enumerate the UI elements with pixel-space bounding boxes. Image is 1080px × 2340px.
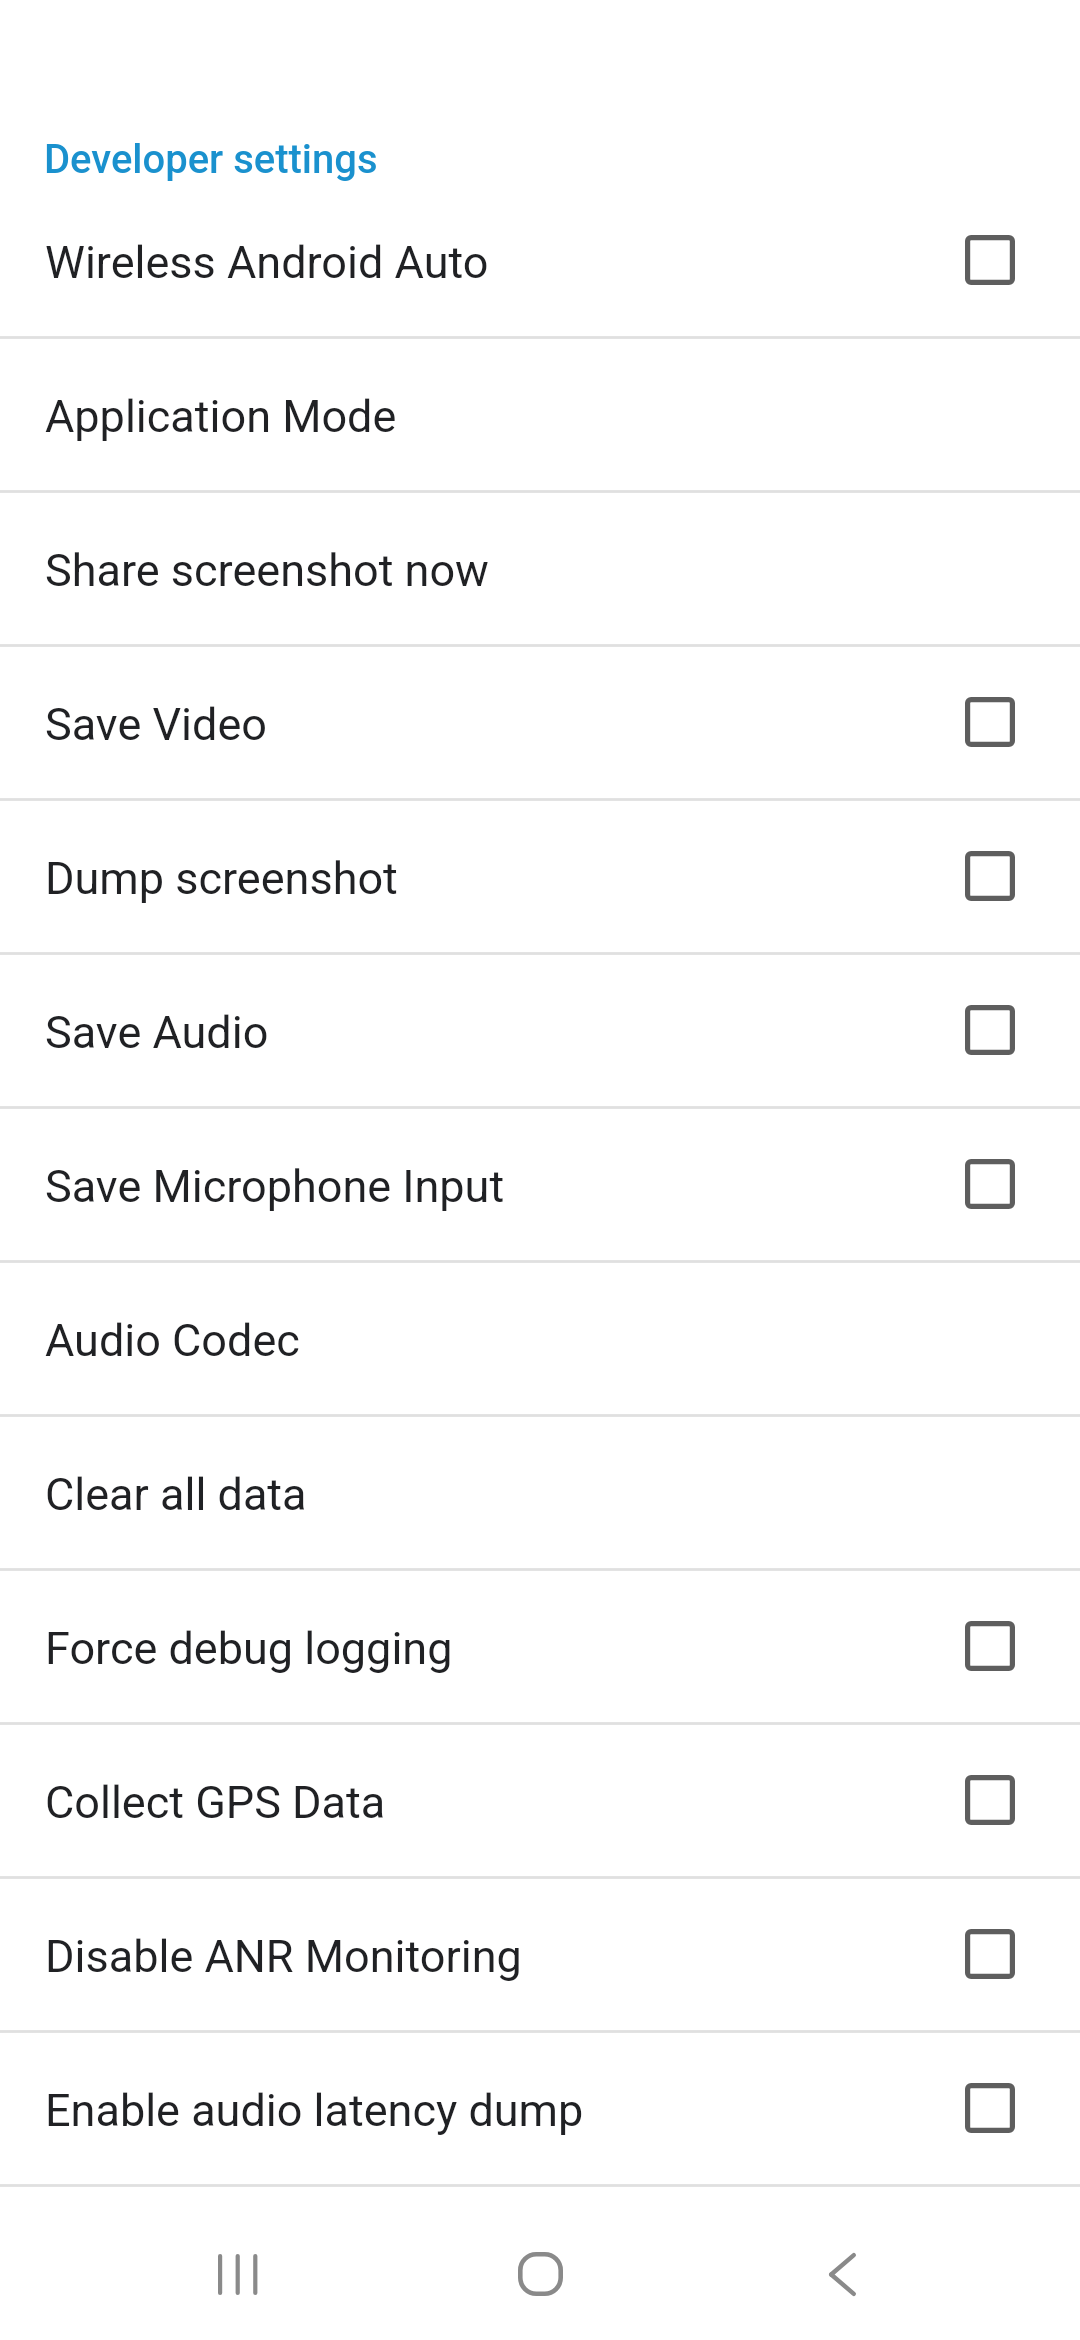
button[interactable]: Enable audio latency dump	[0, 2033, 1080, 2184]
button[interactable]: Disable ANR Monitoring	[0, 1879, 1080, 2030]
button[interactable]: Application Mode	[0, 339, 1080, 490]
staticText: Wireless Android Auto	[45, 236, 489, 289]
staticText: Collect GPS Data	[45, 1776, 386, 1829]
staticText: Share screenshot now	[45, 544, 489, 597]
staticText: Force debug logging	[45, 1622, 453, 1675]
button[interactable]: Home	[478, 2212, 602, 2336]
staticText: Enable audio latency dump	[45, 2084, 584, 2137]
button[interactable]: Clear all data	[0, 1417, 1080, 1568]
button[interactable]: Recent apps	[177, 2212, 301, 2336]
button[interactable]: Audio Codec	[0, 1263, 1080, 1414]
button[interactable]: Collect GPS Data	[0, 1725, 1080, 1876]
button[interactable]: Back	[780, 2212, 904, 2336]
staticText: Dump screenshot	[45, 852, 398, 905]
button[interactable]: Wireless Android Auto	[0, 185, 1080, 336]
button[interactable]: Force debug logging	[0, 1571, 1080, 1722]
button[interactable]: Share screenshot now	[0, 493, 1080, 644]
staticText: Save Microphone Input	[45, 1160, 505, 1213]
staticText: Application Mode	[45, 390, 397, 443]
staticText: Audio Codec	[45, 1314, 300, 1367]
staticText: Disable ANR Monitoring	[45, 1930, 522, 1983]
button[interactable]: Save Audio	[0, 955, 1080, 1106]
staticText: Developer settings	[44, 136, 378, 183]
staticText: Save Audio	[45, 1006, 269, 1059]
staticText: Clear all data	[45, 1468, 307, 1521]
button[interactable]: Dump screenshot	[0, 801, 1080, 952]
button[interactable]: Save Video	[0, 647, 1080, 798]
button[interactable]: Save Microphone Input	[0, 1109, 1080, 1260]
staticText: Save Video	[45, 698, 267, 751]
